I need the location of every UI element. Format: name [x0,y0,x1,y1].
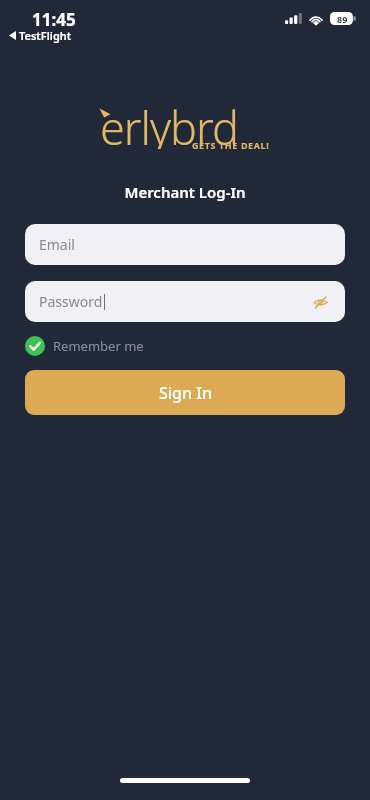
staticText: erlybrd [100,97,238,149]
button[interactable]: Remember me [25,334,345,358]
button[interactable]: Email [25,224,345,265]
staticText: Email [39,235,75,254]
staticText: Remember me [53,337,144,355]
button[interactable]: Show password [309,291,331,313]
staticText: Sign In [159,382,212,404]
staticText: 89 [337,13,348,25]
staticText: 11:45 [32,8,76,31]
staticText: TestFlight [19,28,72,43]
button[interactable]: Password [25,281,345,322]
staticText: Password [39,292,103,311]
staticText: Merchant Log-In [124,182,246,202]
staticText: GETS THE DEAL! [192,139,270,151]
button[interactable]: Sign In [25,370,345,415]
